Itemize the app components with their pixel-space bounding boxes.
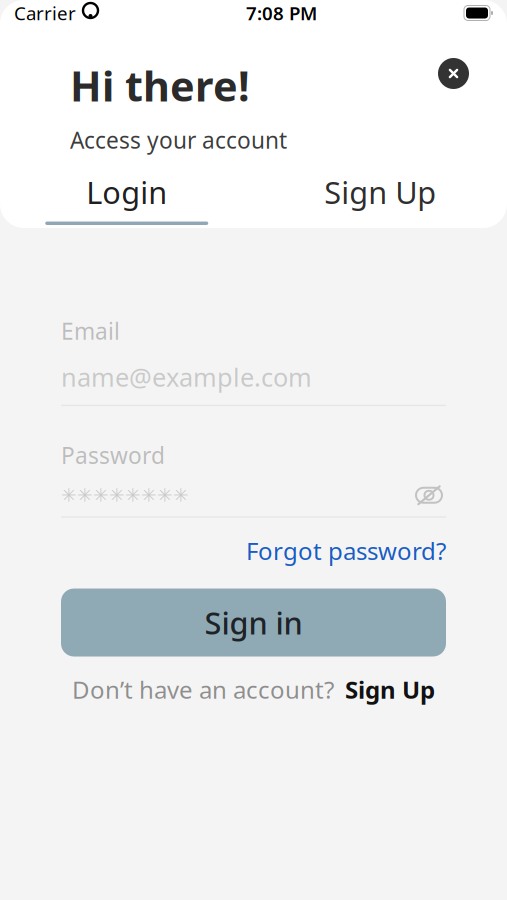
staticText: Sign in bbox=[204, 602, 302, 643]
button[interactable]: Sign in bbox=[61, 588, 446, 656]
staticText: Sign Up bbox=[345, 673, 435, 705]
button[interactable]: Forgot password? bbox=[246, 535, 446, 566]
staticText: Email bbox=[61, 316, 120, 346]
staticText: Sign Up bbox=[324, 172, 436, 212]
staticText: Hi there! bbox=[70, 58, 250, 113]
staticText: Carrier bbox=[14, 1, 76, 25]
button[interactable]: Close bbox=[438, 58, 469, 89]
staticText: Forgot password? bbox=[246, 535, 446, 566]
staticText: Access your account bbox=[70, 125, 287, 155]
staticText: Password bbox=[61, 440, 165, 470]
button[interactable]: Show password bbox=[412, 482, 446, 508]
staticText: ✳✳✳✳✳✳✳✳ bbox=[61, 485, 189, 506]
staticText: 7:08 PM bbox=[246, 1, 317, 25]
button[interactable]: Login bbox=[0, 172, 253, 225]
staticText: Don’t have an account? bbox=[72, 673, 334, 705]
staticText: name@example.com bbox=[61, 360, 312, 394]
button[interactable]: Sign Up bbox=[253, 172, 507, 225]
button[interactable]: Don’t have an account? bbox=[61, 667, 446, 711]
staticText: Login bbox=[86, 172, 167, 212]
